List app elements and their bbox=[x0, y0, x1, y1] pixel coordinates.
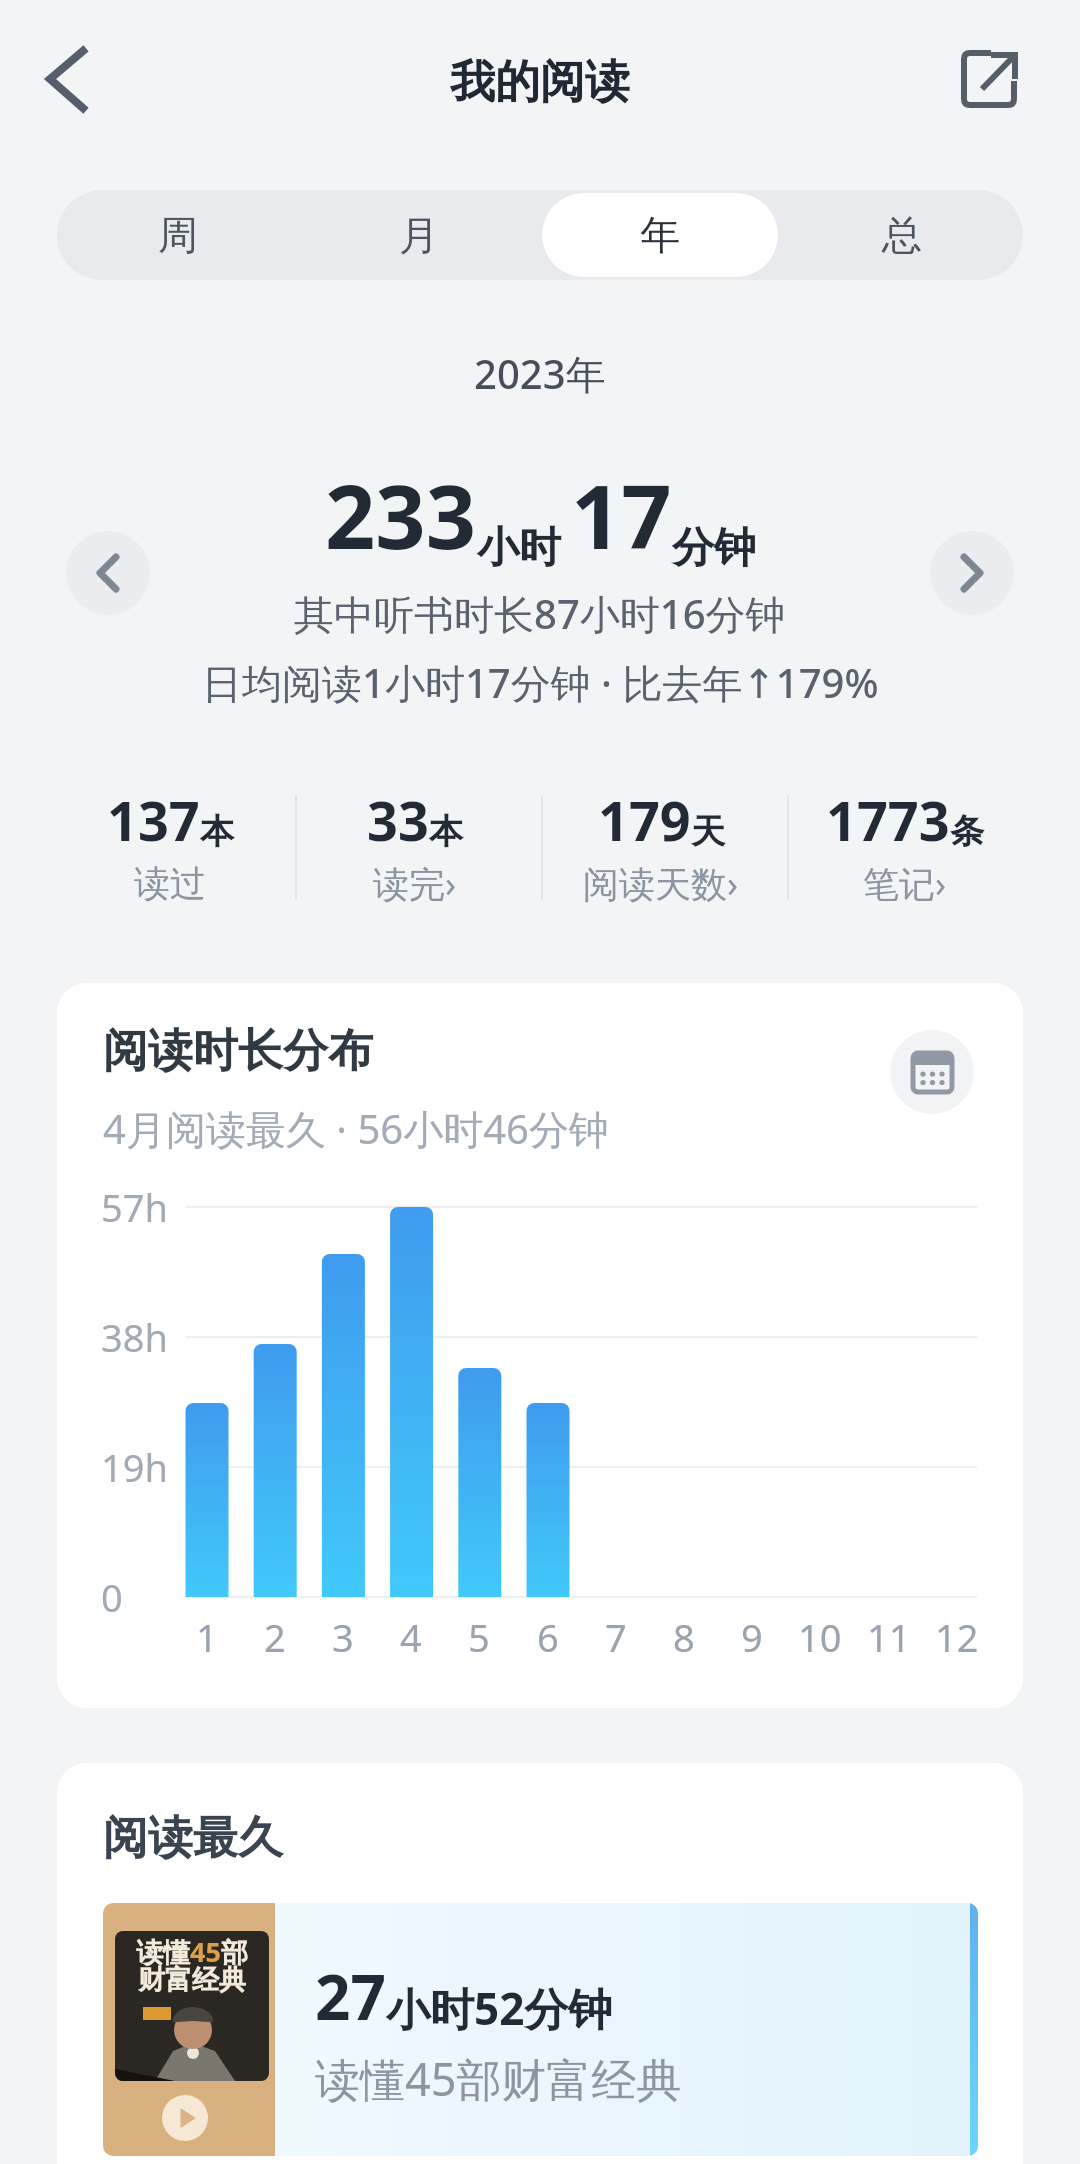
button[interactable] bbox=[30, 40, 110, 120]
staticText: 2 bbox=[264, 1611, 286, 1663]
button[interactable] bbox=[950, 40, 1030, 120]
staticText: 4 bbox=[400, 1611, 422, 1663]
staticText: 19h bbox=[101, 1441, 168, 1493]
staticText: 1773 bbox=[826, 783, 950, 857]
staticText: 读完› bbox=[373, 859, 457, 908]
button[interactable]: 读懂45部 bbox=[103, 1903, 978, 2156]
button[interactable]: 179 bbox=[541, 780, 781, 910]
staticText: 2023年 bbox=[474, 346, 606, 401]
staticText: 0 bbox=[101, 1571, 123, 1623]
staticText: 10 bbox=[798, 1611, 842, 1663]
staticText: 38h bbox=[101, 1311, 168, 1363]
staticText: 4月阅读最久 · 56小时46分钟 bbox=[103, 1101, 609, 1156]
staticText: 7 bbox=[605, 1611, 627, 1663]
button[interactable]: 月 bbox=[301, 193, 536, 277]
staticText: 周 bbox=[158, 210, 198, 260]
staticText: 6 bbox=[537, 1611, 559, 1663]
button[interactable] bbox=[66, 531, 150, 615]
button[interactable]: 137 bbox=[50, 780, 290, 910]
staticText: 阅读时长分布 bbox=[103, 1023, 373, 1080]
staticText: 分钟 bbox=[672, 522, 756, 575]
staticText: 我的阅读 bbox=[450, 54, 630, 111]
staticText: 笔记› bbox=[863, 859, 947, 908]
staticText: 12 bbox=[935, 1611, 979, 1663]
staticText: 33 bbox=[367, 783, 429, 857]
button[interactable]: 年 bbox=[542, 193, 778, 277]
button[interactable]: 总 bbox=[784, 193, 1020, 277]
staticText: 11 bbox=[867, 1611, 911, 1663]
button[interactable] bbox=[930, 531, 1014, 615]
staticText: 读懂45部 bbox=[136, 1933, 248, 1969]
staticText: 本 bbox=[429, 810, 463, 853]
staticText: 9 bbox=[741, 1611, 763, 1663]
staticText: 3 bbox=[332, 1611, 354, 1663]
staticText: 8 bbox=[673, 1611, 695, 1663]
staticText: 5 bbox=[468, 1611, 490, 1663]
staticText: 条 bbox=[950, 810, 984, 853]
staticText: 年 bbox=[640, 210, 680, 260]
staticText: 233 bbox=[325, 455, 477, 575]
staticText: 日均阅读1小时17分钟 · 比去年↑179% bbox=[202, 655, 879, 710]
button[interactable]: 周 bbox=[60, 193, 295, 277]
staticText: 财富经典 bbox=[138, 1963, 246, 1997]
staticText: 阅读最久 bbox=[103, 1810, 283, 1867]
staticText: 天 bbox=[691, 810, 725, 853]
staticText: 小时 bbox=[477, 522, 561, 575]
staticText: 读过 bbox=[134, 861, 206, 906]
staticText: 读懂45部财富经典 bbox=[315, 2048, 682, 2104]
staticText: 57h bbox=[101, 1181, 168, 1233]
staticText: 本 bbox=[200, 810, 234, 853]
button[interactable]: 33 bbox=[295, 780, 535, 910]
staticText: 其中听书时长87小时16分钟 bbox=[294, 586, 786, 641]
button[interactable] bbox=[890, 1030, 974, 1114]
staticText: 总 bbox=[882, 210, 922, 260]
staticText: 阅读天数› bbox=[583, 859, 739, 908]
staticText: 1 bbox=[196, 1611, 218, 1663]
staticText: 17 bbox=[571, 455, 672, 575]
staticText: 179 bbox=[598, 783, 691, 857]
staticText: 27 bbox=[315, 1954, 386, 2038]
staticText: 137 bbox=[107, 783, 200, 857]
staticText: 小时52分钟 bbox=[386, 1978, 613, 2038]
staticText: 月 bbox=[399, 210, 439, 260]
button[interactable]: 1773 bbox=[785, 780, 1025, 910]
